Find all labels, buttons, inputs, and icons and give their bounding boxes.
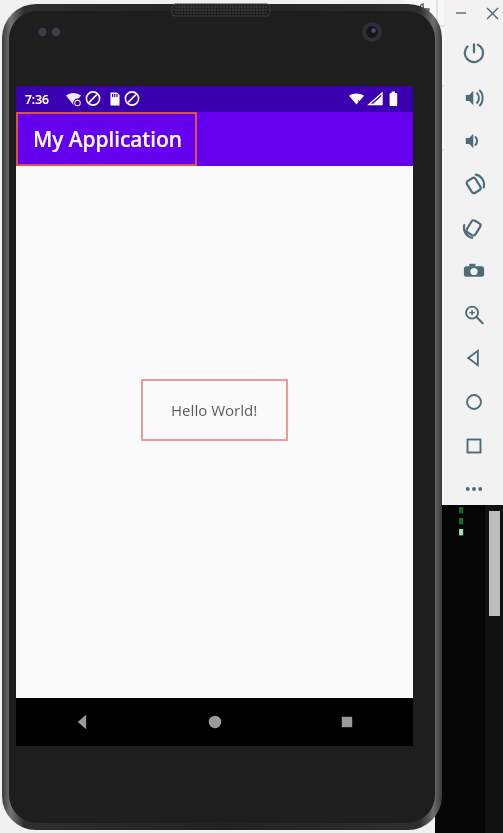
button[interactable]: Rotate left	[458, 169, 490, 201]
button[interactable]: Back	[16, 698, 149, 746]
button[interactable]: Rotate right	[458, 212, 490, 244]
button[interactable]: Recent apps	[281, 698, 413, 746]
button[interactable]: Power	[458, 37, 490, 69]
button[interactable]: Close	[482, 2, 503, 24]
button[interactable]: More	[458, 473, 490, 505]
button[interactable]: Volume up	[458, 82, 490, 114]
button[interactable]: Screenshot	[458, 255, 490, 287]
button[interactable]: Home	[458, 386, 490, 418]
button[interactable]: Volume down	[458, 125, 490, 157]
button[interactable]: Back	[458, 342, 490, 374]
staticText: My Application	[33, 125, 182, 154]
button[interactable]: My Application	[16, 112, 197, 166]
staticText: 7:36	[25, 91, 49, 107]
staticText: Hello World!	[171, 400, 258, 420]
button[interactable]: Minimize	[450, 2, 472, 24]
button[interactable]: Home	[149, 698, 281, 746]
button[interactable]: Overview	[458, 430, 490, 462]
button[interactable]: Zoom	[458, 299, 490, 331]
button[interactable]: Hello World!	[141, 379, 288, 441]
